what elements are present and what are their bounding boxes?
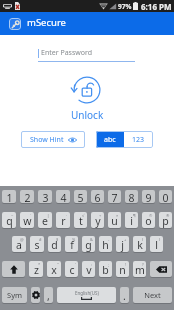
staticText: u	[111, 214, 118, 228]
button[interactable]: |	[38, 212, 52, 228]
staticText: o	[145, 214, 152, 228]
staticText: (	[142, 237, 144, 242]
button[interactable]: #	[30, 236, 44, 252]
staticText: h	[102, 238, 109, 252]
button[interactable]: ;	[99, 261, 112, 277]
button[interactable]: :	[82, 261, 95, 277]
staticText: Sym	[7, 290, 22, 300]
staticText: &	[90, 237, 93, 242]
staticText: p	[162, 214, 169, 228]
staticText: a	[16, 238, 22, 252]
staticText: k	[137, 238, 143, 252]
button[interactable]: Settings	[31, 287, 40, 303]
button[interactable]: +	[116, 236, 129, 252]
button[interactable]: Backspace	[150, 261, 172, 277]
button[interactable]: -	[99, 236, 112, 252]
staticText: 4	[60, 191, 67, 203]
staticText: "	[57, 262, 59, 267]
staticText: |	[47, 213, 50, 218]
button[interactable]: %	[65, 236, 78, 252]
button[interactable]: ®	[159, 212, 172, 228]
staticText: m	[135, 263, 145, 277]
staticText: ~	[11, 213, 14, 218]
staticText: 123	[132, 135, 145, 145]
button[interactable]: `	[20, 212, 34, 228]
button[interactable]: ¶	[125, 212, 138, 228]
staticText: 3	[42, 191, 49, 203]
button[interactable]: 1	[2, 190, 16, 203]
button[interactable]: ,	[44, 287, 53, 303]
button[interactable]: 0	[159, 190, 172, 203]
staticText: '	[75, 262, 76, 267]
button[interactable]: 3	[38, 190, 52, 203]
staticText: l	[155, 238, 158, 252]
button[interactable]: '	[65, 261, 78, 277]
staticText: :	[91, 262, 93, 267]
staticText: .	[123, 289, 126, 303]
button[interactable]: mSecure app icon	[9, 18, 21, 30]
button[interactable]: .	[120, 287, 129, 303]
button[interactable]: 6	[91, 190, 104, 203]
staticText: 1	[6, 191, 13, 203]
button[interactable]: ~	[2, 212, 16, 228]
button[interactable]: 8	[125, 190, 138, 203]
staticText: $	[56, 237, 59, 242]
button[interactable]: Enter Password	[38, 48, 135, 62]
staticText: c	[69, 263, 75, 277]
button[interactable]: ?	[133, 261, 146, 277]
staticText: %	[72, 237, 76, 242]
button[interactable]: Show Hint	[21, 131, 85, 148]
button[interactable]: )	[150, 236, 163, 252]
button[interactable]: $	[48, 236, 61, 252]
staticText: v	[86, 263, 92, 277]
staticText: 0	[162, 191, 169, 203]
staticText: n	[119, 263, 126, 277]
button[interactable]: &	[82, 236, 95, 252]
staticText: g	[85, 238, 92, 252]
staticText: b	[102, 263, 109, 277]
button[interactable]: Sym	[2, 287, 27, 303]
staticText: ÷	[99, 213, 102, 218]
staticText: f	[70, 238, 74, 252]
staticText: `	[30, 213, 32, 218]
staticText: abc	[104, 135, 116, 145]
staticText: 2	[24, 191, 31, 203]
staticText: √	[82, 213, 85, 218]
button[interactable]: ÷	[91, 212, 104, 228]
button[interactable]: @	[12, 236, 26, 252]
staticText: Unlock	[71, 108, 104, 122]
staticText: t	[79, 214, 83, 228]
button[interactable]: 123	[124, 131, 153, 148]
staticText: i	[130, 214, 133, 228]
button[interactable]: English(US)	[57, 287, 116, 303]
button[interactable]: 2	[20, 190, 34, 203]
staticText: !	[125, 262, 127, 267]
button[interactable]: 9	[142, 190, 155, 203]
button[interactable]: 4	[56, 190, 70, 203]
button[interactable]: √	[74, 212, 87, 228]
staticText: ®	[166, 213, 170, 218]
button[interactable]: ©	[142, 212, 155, 228]
button[interactable]: Unlock	[69, 72, 105, 108]
button[interactable]: 5	[74, 190, 87, 203]
button[interactable]: 7	[108, 190, 121, 203]
staticText: Enter Password	[41, 48, 93, 58]
staticText: @	[20, 237, 24, 242]
staticText: 6:16 PM	[141, 1, 172, 12]
staticText: 8	[128, 191, 135, 203]
staticText: Show Hint	[30, 135, 64, 145]
button[interactable]: !	[116, 261, 129, 277]
button[interactable]: (	[133, 236, 146, 252]
staticText: ,	[47, 289, 50, 303]
staticText: ;	[108, 262, 110, 267]
button[interactable]: *	[29, 261, 43, 277]
button[interactable]: ×	[108, 212, 121, 228]
button[interactable]: Shift	[2, 261, 25, 277]
button[interactable]: ·	[56, 212, 70, 228]
staticText: 5	[77, 191, 84, 203]
button[interactable]: "	[47, 261, 61, 277]
button[interactable]: Next	[133, 287, 172, 303]
staticText: e	[42, 214, 48, 228]
button[interactable]: abc	[96, 131, 124, 148]
staticText: 7	[111, 191, 118, 203]
